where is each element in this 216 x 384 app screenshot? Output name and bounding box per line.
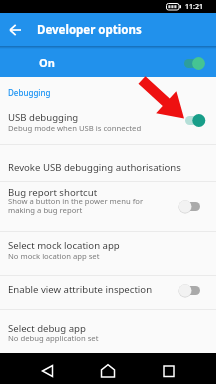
- staticText: No mock location app set: [8, 251, 100, 261]
- staticText: 11:21: [185, 2, 203, 12]
- button[interactable]: [100, 364, 116, 378]
- button[interactable]: Select mock location app: [0, 232, 216, 275]
- staticText: Select mock location app: [8, 239, 120, 252]
- staticText: Bug report shortcut: [8, 186, 98, 199]
- staticText: No debug application set: [8, 333, 99, 343]
- staticText: making a bug report: [8, 205, 83, 215]
- staticText: Debugging: [8, 87, 51, 98]
- button[interactable]: [40, 365, 56, 379]
- button[interactable]: Revoke USB debugging authorisations: [0, 145, 216, 181]
- staticText: On: [39, 55, 55, 70]
- button[interactable]: Bug report shortcut: [0, 182, 216, 231]
- button[interactable]: USB debugging: [0, 96, 216, 144]
- button[interactable]: Select debug app: [0, 310, 216, 353]
- button[interactable]: [6, 20, 26, 40]
- staticText: Developer options: [37, 22, 142, 38]
- staticText: Revoke USB debugging authorisations: [8, 161, 181, 174]
- staticText: Select debug app: [8, 322, 86, 335]
- button[interactable]: Enable view attribute inspection: [0, 276, 216, 309]
- staticText: Debug mode when USB is connected: [8, 123, 142, 133]
- staticText: Show a button in the power menu for: [8, 196, 144, 206]
- button[interactable]: [162, 365, 176, 379]
- staticText: USB debugging: [8, 111, 79, 124]
- staticText: Enable view attribute inspection: [8, 283, 153, 296]
- button[interactable]: On: [0, 49, 216, 77]
